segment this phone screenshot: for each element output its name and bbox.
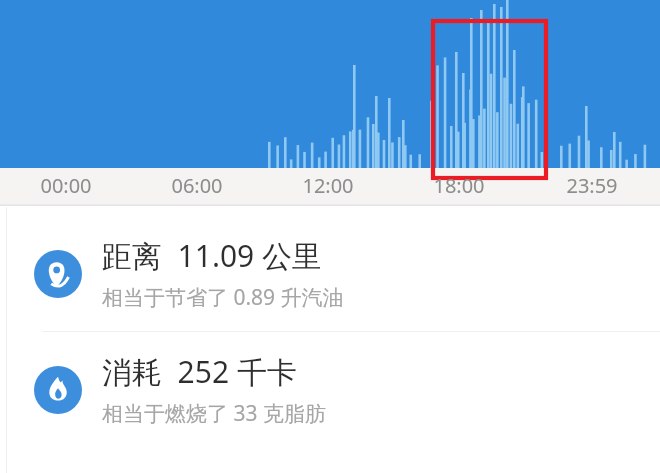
button[interactable]: Calories xyxy=(0,332,660,447)
staticText: 23:59 xyxy=(524,172,660,199)
other: Calories xyxy=(34,366,82,414)
staticText: 12:00 xyxy=(262,172,394,199)
staticText: 00:00 xyxy=(0,172,132,199)
staticText: 06:00 xyxy=(132,172,262,199)
staticText: 18:00 xyxy=(394,172,524,199)
staticText: 距离 11.09 公里 xyxy=(102,235,323,276)
button[interactable]: Distance xyxy=(0,216,660,331)
staticText: 消耗 252 千卡 xyxy=(102,351,297,392)
other: Distance xyxy=(34,250,82,298)
staticText: 相当于燃烧了 33 克脂肪 xyxy=(102,399,326,428)
staticText: 相当于节省了 0.89 升汽油 xyxy=(102,283,344,312)
